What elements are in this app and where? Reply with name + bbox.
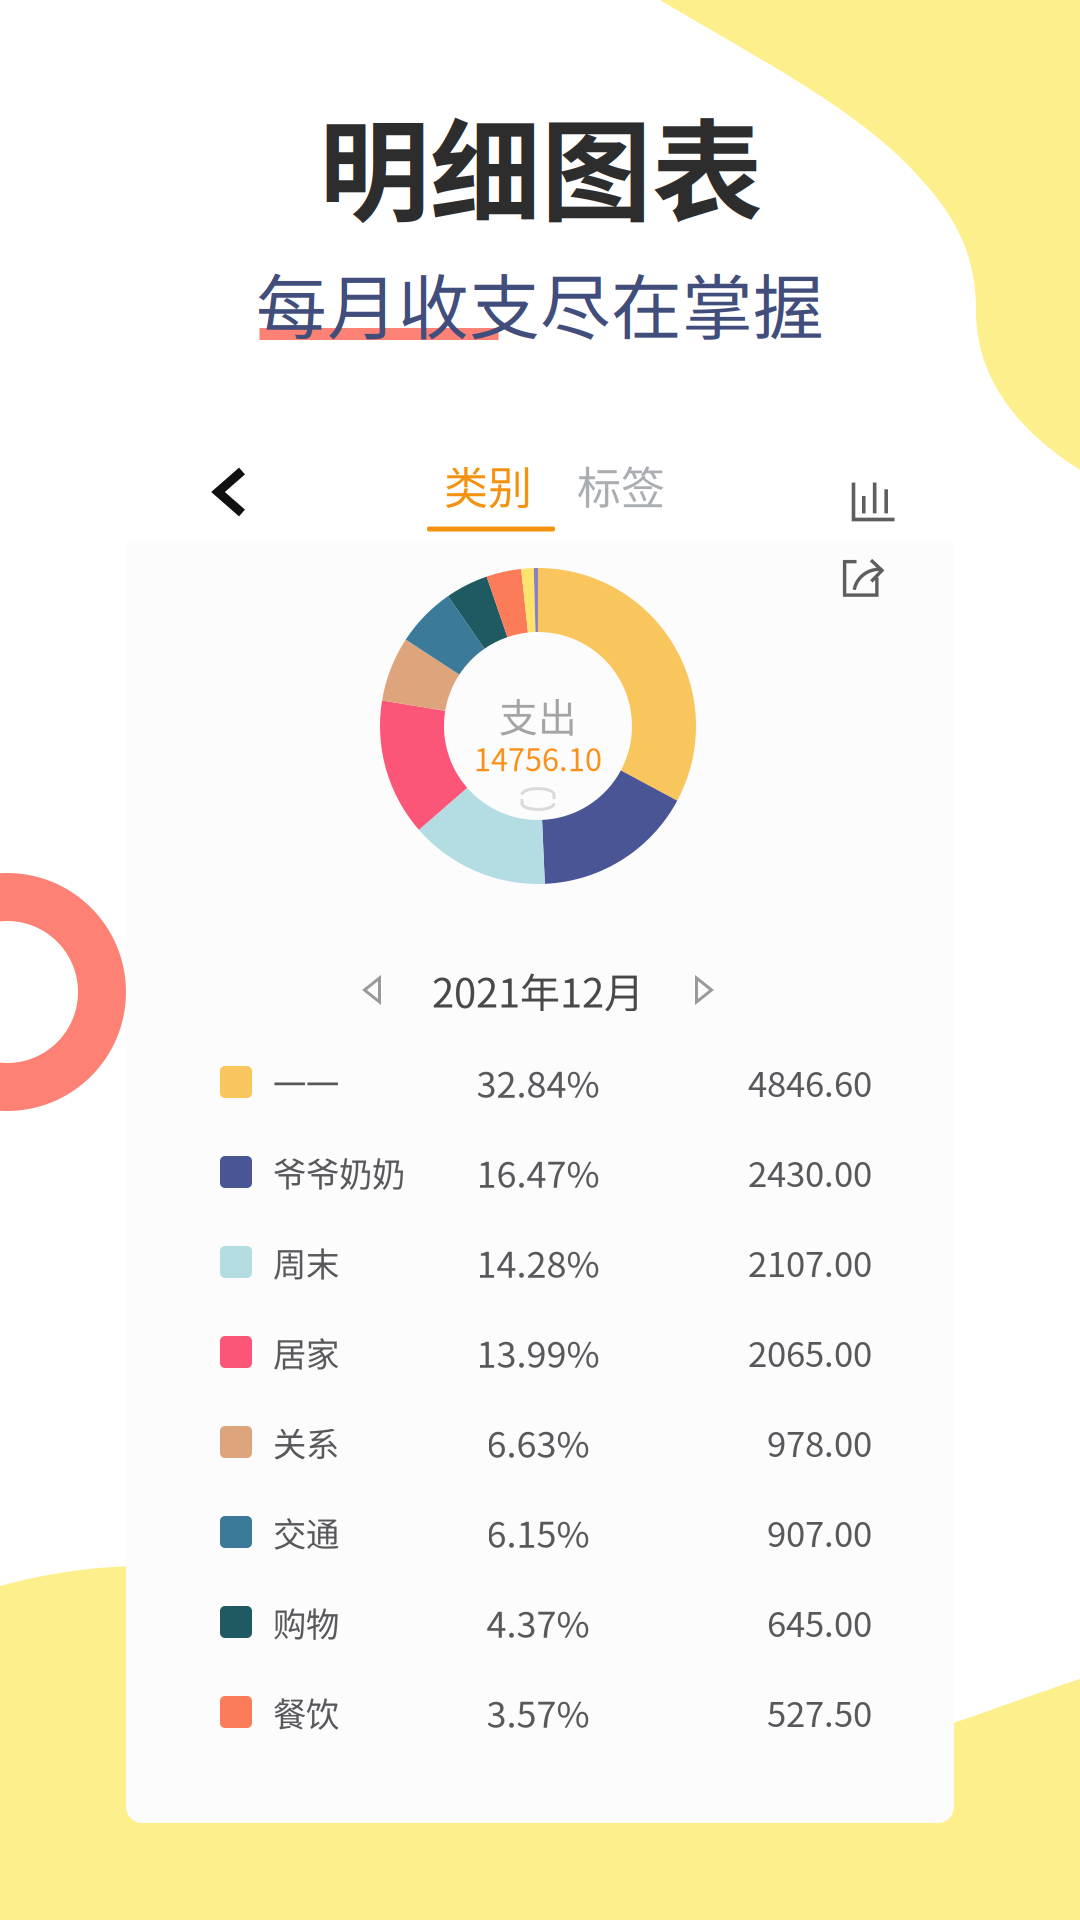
staticText: 2430.00 — [748, 1147, 872, 1197]
staticText: 16.47% — [476, 1146, 599, 1198]
staticText: 527.50 — [767, 1687, 872, 1737]
staticText: 3.57% — [486, 1686, 589, 1738]
staticText: 交通 — [273, 1508, 339, 1556]
staticText: 2107.00 — [748, 1237, 872, 1287]
staticText: 关系 — [273, 1418, 339, 1466]
button[interactable]: Bar chart — [823, 452, 924, 549]
button[interactable]: Back — [186, 439, 274, 545]
button[interactable]: 标签 — [551, 430, 691, 540]
button[interactable]: 爷爷奶奶 — [126, 1127, 954, 1217]
staticText: 978.00 — [767, 1417, 872, 1467]
staticText: 645.00 — [767, 1597, 872, 1647]
staticText: 6.15% — [486, 1506, 589, 1558]
staticText: 907.00 — [767, 1507, 872, 1557]
staticText: 餐饮 — [273, 1688, 339, 1736]
staticText: 6.63% — [486, 1416, 589, 1468]
button[interactable]: 关系 — [126, 1397, 954, 1487]
staticText: 一一 — [273, 1058, 339, 1106]
staticText: 明细图表 — [319, 84, 763, 244]
button[interactable]: 交通 — [126, 1487, 954, 1577]
staticText: 支出 — [499, 687, 577, 743]
staticText: 14756.10 — [474, 736, 602, 780]
button[interactable]: 购物 — [126, 1577, 954, 1667]
button[interactable]: 周末 — [126, 1217, 954, 1307]
staticText: 2065.00 — [748, 1327, 872, 1377]
staticText: 类别 — [444, 453, 532, 517]
staticText: 4.37% — [486, 1596, 589, 1648]
staticText: 13.99% — [476, 1326, 599, 1378]
staticText: 爷爷奶奶 — [273, 1148, 405, 1196]
button[interactable]: 类别 — [403, 417, 573, 543]
staticText: 每月收支尽在掌握 — [256, 252, 824, 354]
button[interactable]: Share — [814, 529, 912, 627]
button[interactable]: 一一 — [126, 1037, 954, 1127]
staticText: 居家 — [273, 1328, 339, 1376]
staticText: 14.28% — [476, 1236, 599, 1288]
button[interactable]: 餐饮 — [126, 1667, 954, 1757]
staticText: 购物 — [273, 1598, 339, 1646]
staticText: 32.84% — [476, 1056, 599, 1108]
staticText: 周末 — [273, 1238, 339, 1286]
staticText: 4846.60 — [748, 1057, 872, 1107]
button[interactable]: 2021年12月 — [126, 943, 954, 1037]
button[interactable]: 居家 — [126, 1307, 954, 1397]
staticText: 2021年12月 — [432, 961, 644, 1019]
staticText: 标签 — [577, 453, 665, 517]
